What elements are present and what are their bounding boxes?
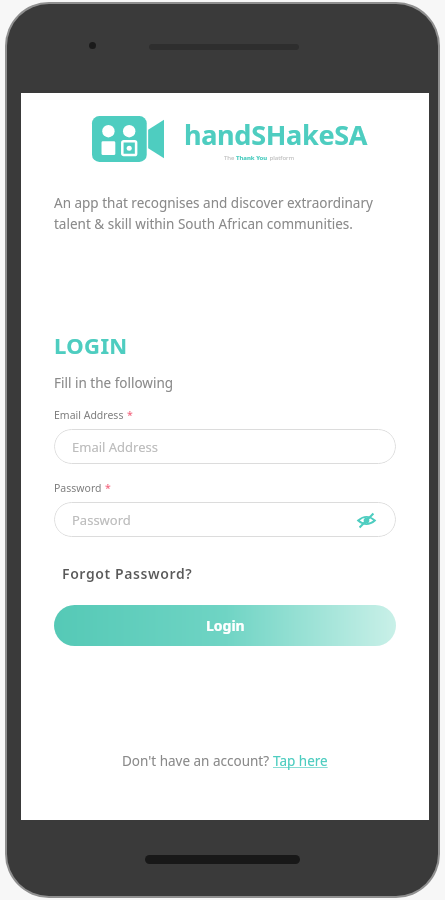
button[interactable]: Password: [54, 502, 396, 537]
staticText: platform: [268, 154, 295, 162]
staticText: Forgot Password?: [62, 564, 193, 583]
staticText: Fill in the following: [54, 374, 174, 392]
button[interactable]: Forgot Password?: [62, 562, 193, 585]
staticText: Thank You: [236, 154, 268, 162]
staticText: Login: [206, 616, 245, 635]
button[interactable]: Login: [54, 605, 396, 646]
staticText: Password: [54, 481, 102, 495]
button[interactable]: Email Address: [54, 429, 396, 464]
button[interactable]: Toggle password visibility: [354, 508, 378, 532]
staticText: Password: [72, 511, 131, 529]
staticText: *: [127, 408, 133, 422]
staticText: Email Address: [72, 438, 158, 456]
button[interactable]: Tap here: [273, 752, 328, 770]
staticText: The: [224, 154, 236, 162]
staticText: LOGIN: [54, 330, 128, 360]
staticText: handSHakeSA: [184, 116, 368, 153]
staticText: An app that recognises and discover extr…: [54, 194, 373, 233]
staticText: *: [105, 481, 111, 495]
staticText: Don't have an account?: [122, 752, 273, 770]
staticText: Email Address: [54, 408, 124, 422]
staticText: Tap here: [273, 752, 328, 770]
